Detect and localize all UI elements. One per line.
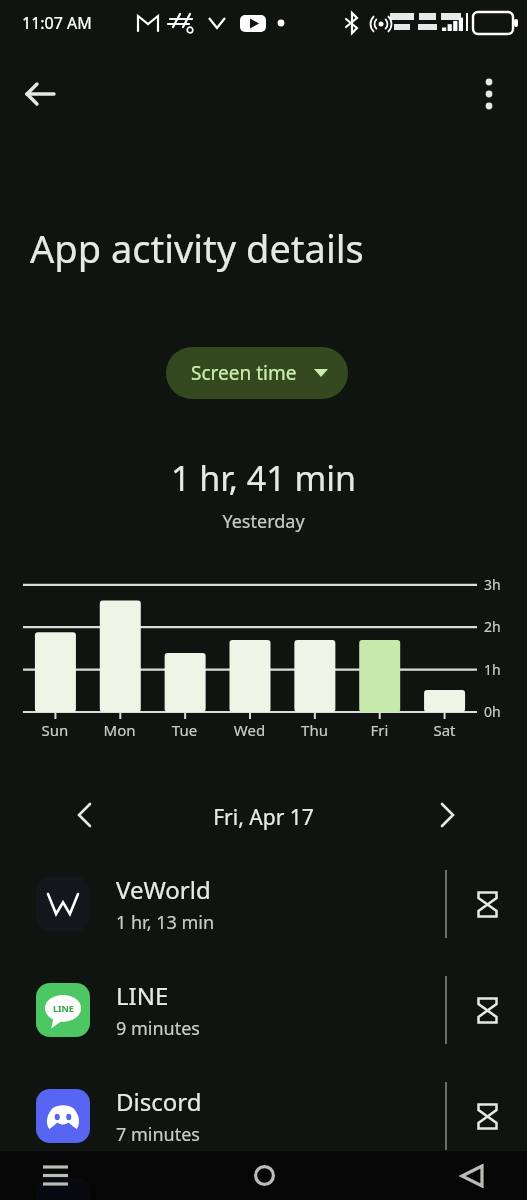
staticText: 3h xyxy=(484,575,501,594)
staticText: 11:07 AM xyxy=(22,12,92,34)
button[interactable]: Previous day xyxy=(62,792,108,838)
button[interactable]: Back xyxy=(417,1151,527,1200)
staticText: Fri xyxy=(347,720,412,740)
button[interactable]: Next day xyxy=(424,792,470,838)
button[interactable]: Back xyxy=(17,70,65,118)
button[interactable]: VeWorld xyxy=(0,860,527,948)
button[interactable]: App timer xyxy=(447,1072,527,1160)
staticText: Sat xyxy=(412,720,477,740)
staticText: App activity details xyxy=(30,222,364,274)
staticText: Screen time xyxy=(191,360,297,386)
button[interactable]: LINE xyxy=(0,966,527,1054)
button[interactable]: Discord xyxy=(0,1072,527,1160)
button[interactable]: App timer xyxy=(447,966,527,1054)
staticText: 7 minutes xyxy=(116,1122,200,1147)
staticText: Fri, Apr 17 xyxy=(0,803,527,832)
staticText: VeWorld xyxy=(116,873,211,906)
button[interactable]: More options xyxy=(465,70,513,118)
button[interactable]: Recent apps xyxy=(0,1151,110,1200)
staticText: Tue xyxy=(152,720,217,740)
staticText: Discord xyxy=(116,1085,202,1118)
staticText: Thu xyxy=(282,720,347,740)
staticText: 0h xyxy=(484,702,501,721)
staticText: Yesterday xyxy=(0,509,527,534)
staticText: Wed xyxy=(217,720,282,740)
staticText: LINE xyxy=(53,1002,74,1014)
staticText: 1 hr, 13 min xyxy=(116,910,215,935)
staticText: Sun xyxy=(23,720,87,740)
staticText: LINE xyxy=(116,979,169,1012)
staticText: 1h xyxy=(484,660,501,679)
button[interactable]: App timer xyxy=(447,860,527,948)
button[interactable]: Screen time xyxy=(166,347,348,399)
staticText: 9 minutes xyxy=(116,1016,200,1041)
staticText: Mon xyxy=(87,720,152,740)
staticText: 1 hr, 41 min xyxy=(0,455,527,501)
staticText: 2h xyxy=(484,617,501,636)
button[interactable]: Home xyxy=(209,1151,319,1200)
